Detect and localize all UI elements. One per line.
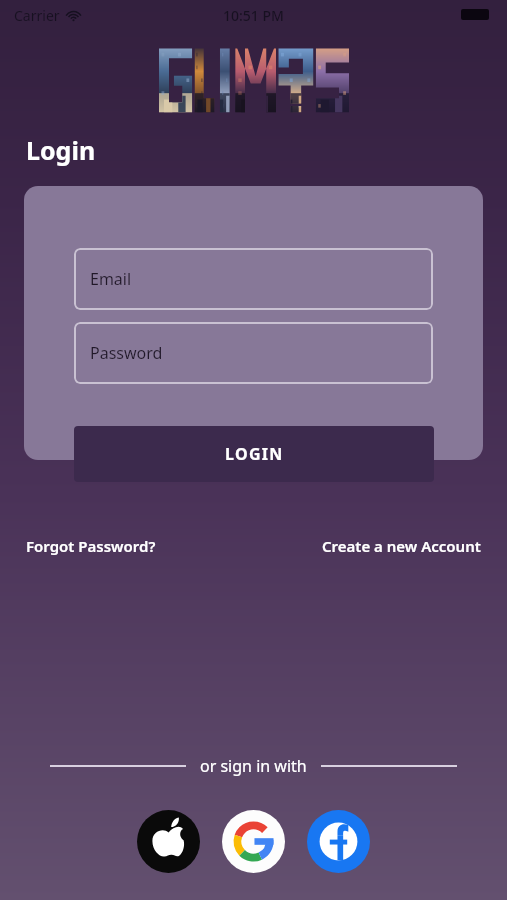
button[interactable]: Password [74,322,433,384]
staticText: Email [90,268,132,290]
button[interactable]: LOGIN [74,426,434,482]
button[interactable]: Sign in with Google [222,810,285,873]
button[interactable]: Email [74,248,433,310]
staticText: or sign in with [200,755,307,777]
staticText: Carrier [14,6,60,25]
button[interactable]: Sign in with Apple [137,810,200,873]
staticText: 10:51 PM [223,6,284,25]
button[interactable]: Forgot Password? [26,532,156,560]
staticText: Create a new Account [322,536,481,556]
staticText: LOGIN [225,443,284,465]
staticText: Forgot Password? [26,536,156,556]
staticText: Password [90,342,163,364]
button[interactable]: Create a new Account [322,532,481,560]
staticText: Login [26,133,96,167]
button[interactable]: Sign in with Facebook [307,810,370,873]
